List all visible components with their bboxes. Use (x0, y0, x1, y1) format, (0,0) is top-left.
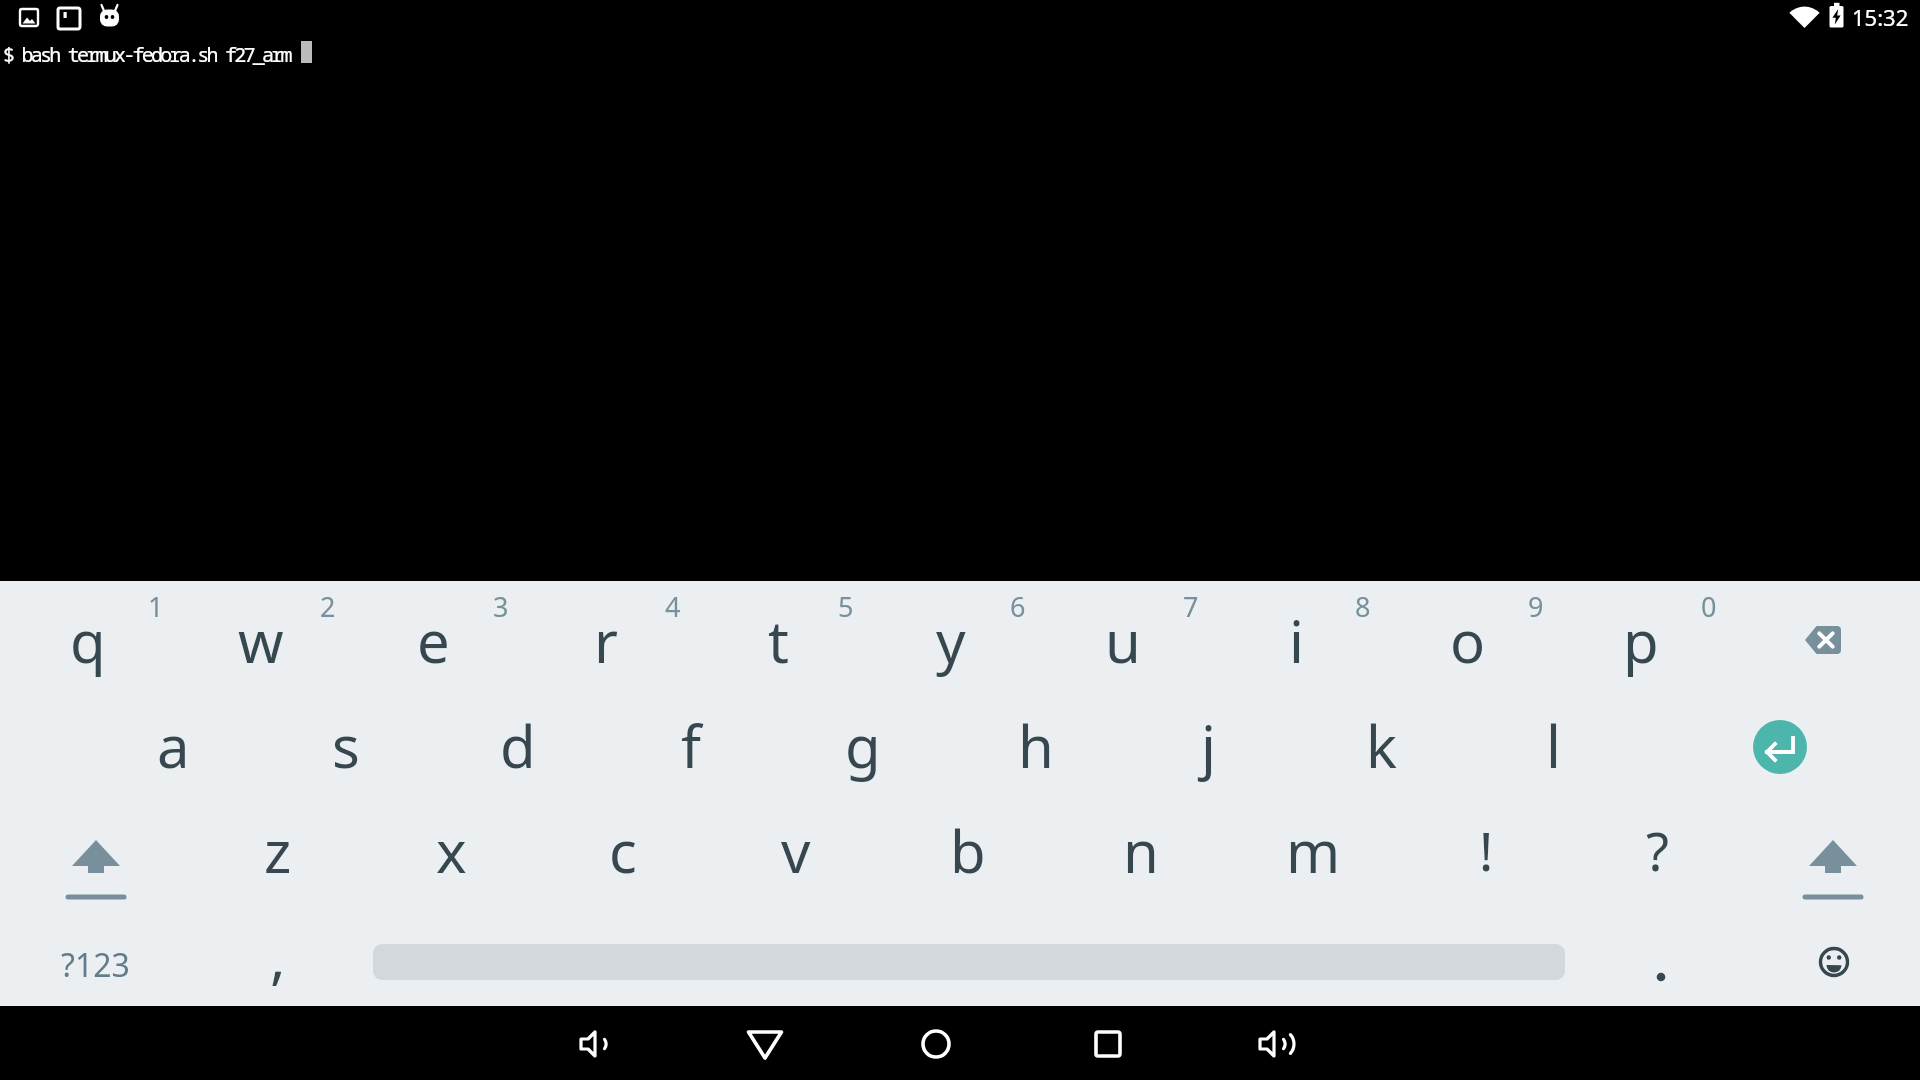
staticText: 8 (1355, 588, 1371, 625)
staticText: z (264, 811, 292, 890)
staticText: 6 (1010, 588, 1026, 625)
staticText: o (1450, 601, 1486, 680)
staticText: j (1201, 706, 1216, 785)
button[interactable] (1243, 1014, 1303, 1074)
button[interactable]: w (186, 588, 336, 692)
button[interactable]: g (788, 693, 938, 797)
staticText: , (270, 916, 286, 995)
button[interactable]: h (961, 693, 1111, 797)
staticText: a (157, 706, 190, 785)
staticText: y (936, 601, 966, 680)
button[interactable]: p (1566, 588, 1716, 692)
staticText: l (1546, 706, 1561, 785)
button[interactable] (1078, 1014, 1138, 1074)
button[interactable]: e (358, 588, 508, 692)
button[interactable]: b (893, 798, 1043, 902)
button[interactable]: y (876, 588, 1026, 692)
button[interactable]: z (203, 798, 353, 902)
button[interactable]: v (721, 798, 871, 902)
button[interactable] (0, 581, 1920, 1006)
button[interactable]: n (1066, 798, 1216, 902)
button[interactable]: ?123 (15, 915, 175, 1015)
staticText: 0 (1701, 588, 1717, 625)
staticText: r (594, 601, 618, 680)
button[interactable]: c (548, 798, 698, 902)
staticText: 15:32 (1852, 2, 1909, 32)
staticText: d (500, 706, 536, 785)
button[interactable] (1601, 947, 1721, 1007)
button[interactable]: r (531, 588, 681, 692)
button[interactable]: j (1133, 693, 1283, 797)
button[interactable]: u (1048, 588, 1198, 692)
button[interactable]: k (1306, 693, 1456, 797)
button[interactable] (1758, 816, 1908, 920)
staticText: 9 (1528, 588, 1544, 625)
staticText: n (1123, 811, 1159, 890)
button[interactable]: f (616, 693, 766, 797)
button[interactable]: i (1221, 588, 1371, 692)
button[interactable] (735, 1014, 795, 1074)
staticText: ?123 (61, 943, 130, 987)
staticText: q (70, 601, 106, 680)
staticText: w (238, 601, 284, 680)
staticText: ! (1479, 814, 1494, 886)
staticText: g (845, 706, 881, 785)
button[interactable]: s (271, 693, 421, 797)
button[interactable]: d (443, 693, 593, 797)
staticText: i (1289, 601, 1304, 680)
button[interactable] (1705, 695, 1855, 799)
staticText: t (768, 601, 789, 680)
staticText: 4 (665, 588, 681, 625)
staticText: k (1366, 706, 1397, 785)
staticText: v (781, 811, 811, 890)
button[interactable]: t (703, 588, 853, 692)
staticText: $ bash termux-fedora.sh f27_arm (3, 41, 290, 68)
button[interactable] (1748, 588, 1898, 692)
staticText: 1 (148, 588, 164, 625)
button[interactable]: ? (1583, 798, 1733, 902)
staticText: 5 (838, 588, 854, 625)
button[interactable] (21, 816, 171, 920)
staticText: 7 (1183, 588, 1199, 625)
button[interactable]: ! (1411, 798, 1561, 902)
button[interactable]: , (203, 903, 353, 1007)
staticText: h (1018, 706, 1054, 785)
staticText: m (1286, 811, 1341, 890)
button[interactable]: a (98, 693, 248, 797)
button[interactable] (564, 1014, 624, 1074)
button[interactable]: q (13, 588, 163, 692)
staticText: 3 (493, 588, 509, 625)
staticText: 2 (320, 588, 336, 625)
button[interactable]: o (1393, 588, 1543, 692)
staticText: s (332, 706, 360, 785)
button[interactable]: l (1478, 693, 1628, 797)
button[interactable] (906, 1014, 966, 1074)
staticText: x (436, 811, 467, 890)
staticText: p (1623, 601, 1659, 680)
button[interactable] (1769, 917, 1899, 1007)
button[interactable]: x (376, 798, 526, 902)
staticText: f (681, 706, 701, 785)
staticText: e (417, 601, 450, 680)
staticText: c (609, 811, 637, 890)
staticText: b (950, 811, 986, 890)
staticText: ? (1646, 814, 1670, 886)
staticText: u (1105, 601, 1141, 680)
button[interactable]: m (1238, 798, 1388, 902)
